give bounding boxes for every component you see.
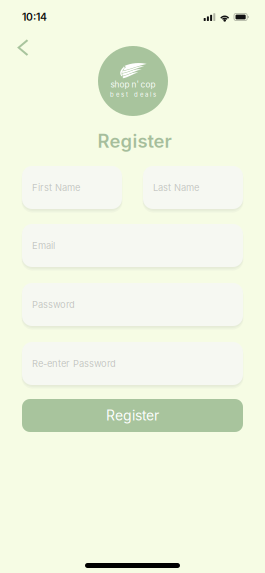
staticText: b e s t d e a l s (110, 91, 156, 98)
staticText: Last Name (153, 182, 199, 193)
staticText: Email (32, 240, 55, 251)
button[interactable]: Register (22, 399, 243, 432)
staticText: 10:14 (22, 11, 47, 23)
staticText: First Name (32, 182, 80, 193)
staticText: Password (32, 299, 75, 310)
button[interactable]: Back (7, 29, 38, 66)
staticText: Register (106, 407, 159, 424)
staticText: Register (97, 130, 171, 152)
staticText: shop n' cop (110, 79, 155, 89)
staticText: Re-enter Password (32, 358, 116, 369)
